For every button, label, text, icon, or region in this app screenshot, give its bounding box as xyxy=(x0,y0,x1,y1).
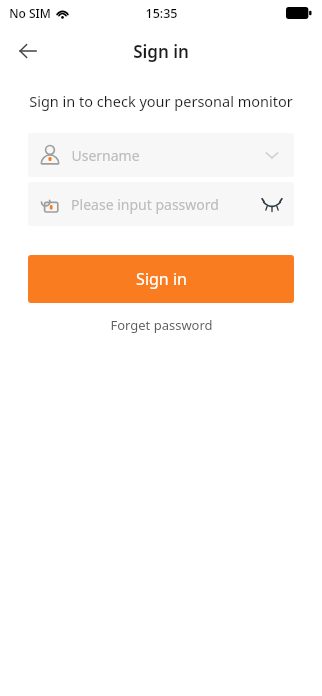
button[interactable]: Username xyxy=(28,133,294,177)
staticText: Forget password xyxy=(110,316,213,334)
staticText: Please input password xyxy=(71,195,219,214)
staticText: Sign in to check your personal monitor xyxy=(29,91,293,111)
button[interactable]: Forget password xyxy=(100,312,223,338)
button[interactable]: Back xyxy=(8,31,48,71)
button[interactable]: Sign in xyxy=(28,255,294,303)
staticText: Username xyxy=(71,146,140,165)
staticText: Sign in xyxy=(136,268,187,290)
staticText: No SIM xyxy=(9,5,51,21)
button[interactable]: Show saved accounts xyxy=(254,137,290,173)
staticText: Sign in xyxy=(133,40,189,63)
button[interactable]: Please input password xyxy=(28,182,294,226)
staticText: 15:35 xyxy=(145,5,178,22)
button[interactable]: Show password xyxy=(254,186,290,222)
